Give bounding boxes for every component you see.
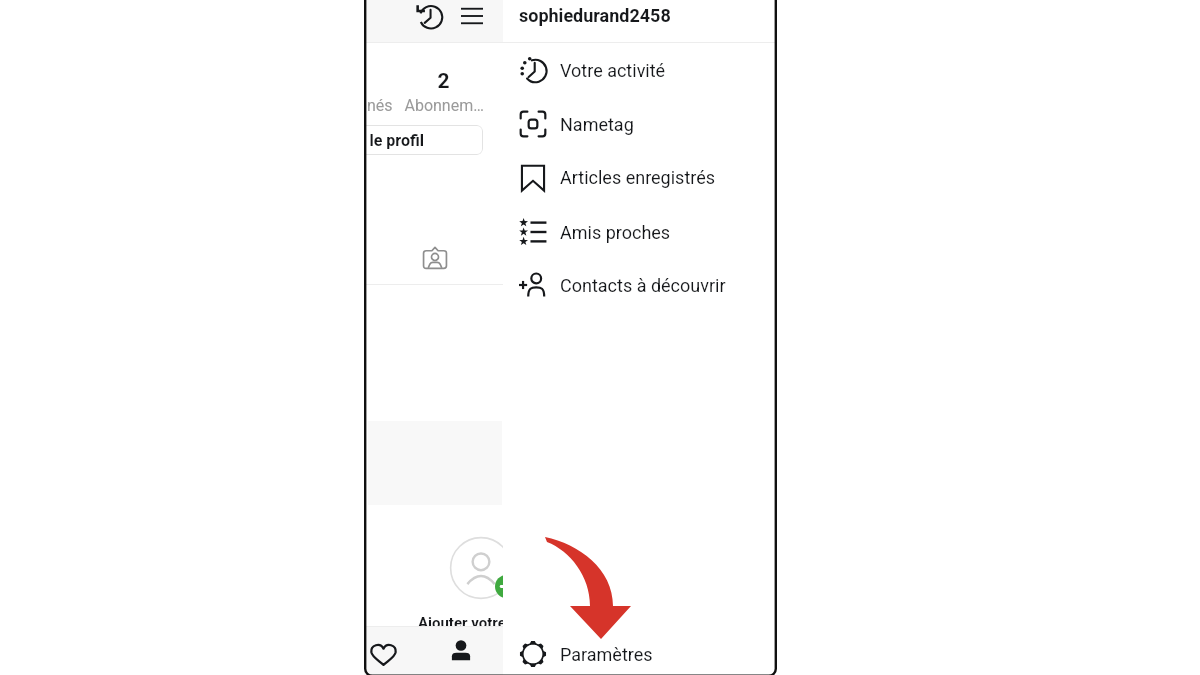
button[interactable]: Modifier le profil — [364, 125, 483, 155]
button[interactable]: Menu — [455, 0, 489, 32]
staticText: Ajouter votre histoire — [418, 614, 561, 632]
button[interactable]: Amis proches — [503, 210, 777, 254]
button[interactable]: Contacts à découvrir — [503, 263, 777, 307]
button[interactable]: Paramètres — [503, 632, 777, 675]
staticText: Paramètres — [560, 644, 653, 665]
staticText: sophiedurand2458 — [519, 5, 671, 26]
staticText: Contacts à découvrir — [560, 275, 726, 296]
staticText: Votre activité — [560, 60, 666, 81]
staticText: Amis proches — [560, 222, 671, 243]
button[interactable]: Profil — [444, 628, 478, 673]
button[interactable]: Notifications — [366, 631, 400, 675]
button[interactable]: Votre activité — [503, 48, 777, 92]
button[interactable]: Articles enregistrés — [503, 155, 777, 199]
staticText: Modifier le profil — [364, 131, 425, 150]
button[interactable]: Nametag — [503, 102, 777, 146]
staticText: 2 — [426, 69, 461, 94]
staticText: nés Abonnem… — [367, 96, 484, 115]
button[interactable]: Historique — [412, 0, 447, 32]
staticText: Nametag — [560, 114, 634, 135]
staticText: Articles enregistrés — [560, 167, 716, 188]
